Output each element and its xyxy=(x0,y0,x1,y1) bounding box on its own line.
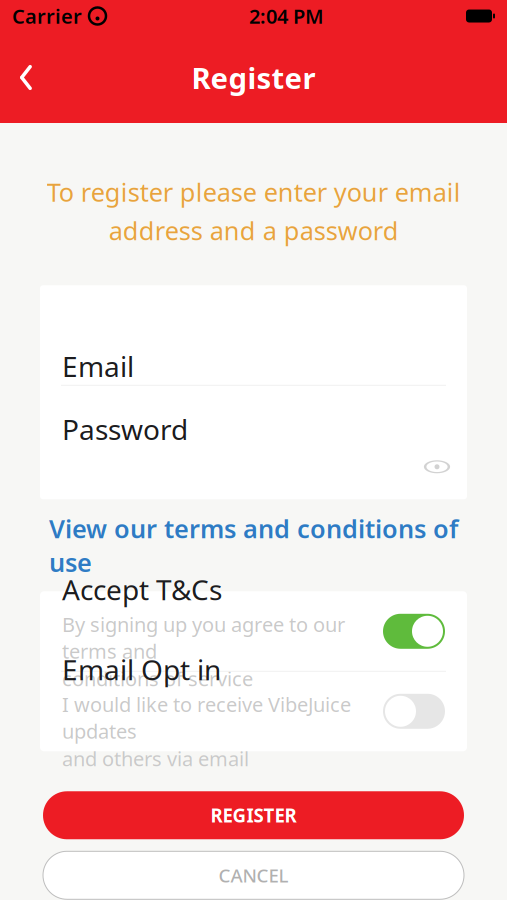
staticText: 2:04 PM xyxy=(249,3,324,29)
staticText: Accept T&Cs xyxy=(62,571,222,608)
button[interactable]: Show password xyxy=(415,448,459,486)
button[interactable]: View our terms and conditions of use xyxy=(40,499,467,591)
staticText: Register xyxy=(191,58,315,97)
staticText: conditions of service xyxy=(62,665,253,692)
button[interactable]: Back xyxy=(0,51,52,103)
staticText: By signing up you agree to our terms and xyxy=(62,611,345,664)
staticText: To register please enter your email addr… xyxy=(46,175,460,247)
staticText: I would like to receive VibeJuice update… xyxy=(62,691,351,744)
button[interactable]: Password xyxy=(40,386,467,448)
staticText: Carrier xyxy=(12,3,82,29)
staticText: Password xyxy=(62,411,188,448)
button[interactable]: Accept T&Cs xyxy=(40,592,467,671)
staticText: REGISTER xyxy=(210,803,296,828)
button[interactable]: Email xyxy=(40,299,467,385)
staticText: and others via email xyxy=(62,745,249,772)
staticText: Email xyxy=(62,348,134,385)
staticText: CANCEL xyxy=(218,863,288,888)
button[interactable]: Email Opt in xyxy=(40,672,467,751)
button[interactable]: REGISTER xyxy=(43,791,464,839)
button[interactable]: CANCEL xyxy=(43,851,464,899)
staticText: Email Opt in xyxy=(62,651,221,688)
staticText: View our terms and conditions of use xyxy=(49,512,458,579)
